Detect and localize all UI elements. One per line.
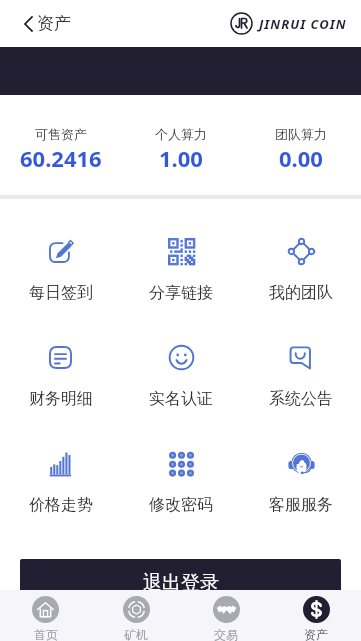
staticText: 矿机	[124, 627, 148, 641]
button[interactable]: 退出登录	[20, 559, 341, 607]
button[interactable]: 首页	[0, 590, 91, 641]
button[interactable]: 每日签到	[0, 238, 121, 303]
staticText: 修改密码	[149, 495, 213, 515]
button[interactable]: 价格走势	[0, 450, 121, 515]
button[interactable]: 分享链接	[121, 238, 241, 303]
button[interactable]: 财务明细	[0, 344, 121, 409]
button[interactable]: 交易	[181, 590, 271, 641]
button[interactable]: 我的团队	[241, 238, 361, 303]
staticText: 每日签到	[29, 283, 93, 303]
staticText: 60.2416	[20, 143, 102, 173]
staticText: 客服服务	[269, 495, 333, 515]
button[interactable]: 客服服务	[241, 450, 361, 515]
staticText: 个人算力	[155, 126, 207, 142]
staticText: 财务明细	[29, 389, 93, 409]
staticText: JINRUI COIN	[259, 15, 347, 33]
staticText: 系统公告	[269, 389, 333, 409]
staticText: 退出登录	[143, 571, 219, 595]
staticText: 交易	[214, 627, 238, 641]
button[interactable]: 实名认证	[121, 344, 241, 409]
staticText: 价格走势	[29, 495, 93, 515]
button[interactable]: 资产	[271, 590, 361, 641]
staticText: 1.00	[159, 143, 203, 173]
staticText: 团队算力	[275, 126, 327, 142]
button[interactable]: Back	[18, 7, 79, 40]
staticText: 分享链接	[149, 283, 213, 303]
button[interactable]: 修改密码	[121, 450, 241, 515]
button[interactable]: JINRUI COIN	[230, 12, 347, 35]
staticText: 我的团队	[269, 283, 333, 303]
staticText: 实名认证	[149, 389, 213, 409]
staticText: 首页	[34, 627, 58, 641]
staticText: 可售资产	[35, 126, 87, 142]
staticText: 资产	[304, 627, 328, 641]
button[interactable]: 矿机	[91, 590, 181, 641]
staticText: 0.00	[279, 143, 323, 173]
button[interactable]: 个人算力	[121, 95, 241, 195]
other: Back	[24, 16, 33, 32]
staticText: 资产	[37, 13, 71, 34]
button[interactable]: 可售资产	[0, 95, 121, 195]
button[interactable]: 系统公告	[241, 344, 361, 409]
button[interactable]: 团队算力	[241, 95, 361, 195]
